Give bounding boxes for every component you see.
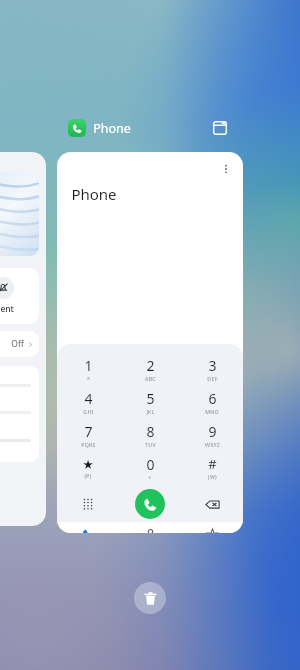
staticText: (P) — [84, 472, 92, 479]
button[interactable]: 6 — [181, 385, 243, 418]
staticText: ABC — [145, 375, 156, 382]
button[interactable]: Clear all — [134, 582, 166, 614]
staticText: (W) — [208, 473, 217, 480]
button[interactable]: 3 — [181, 352, 243, 385]
staticText: Silent — [0, 303, 14, 315]
staticText: WXYZ — [205, 441, 220, 448]
button[interactable]: Contacts — [119, 528, 181, 533]
button[interactable]: 4 — [57, 385, 119, 418]
staticText: # — [208, 455, 217, 473]
button[interactable]: 7 — [57, 418, 119, 451]
button[interactable]: More options — [217, 160, 235, 178]
button[interactable]: Favourites — [181, 528, 243, 533]
button[interactable]: Call — [135, 489, 165, 519]
button[interactable]: Phone — [57, 528, 119, 533]
button[interactable]: Off — [0, 331, 39, 357]
button[interactable]: Silent — [0, 152, 46, 526]
staticText: GHI — [83, 408, 94, 415]
button[interactable]: 5 — [119, 385, 181, 418]
staticText: Phone — [93, 120, 131, 137]
button[interactable]: Split screen — [210, 118, 230, 138]
staticText: 7 — [84, 422, 93, 441]
staticText: 5 — [146, 389, 155, 408]
staticText: JKL — [146, 408, 155, 415]
button[interactable]: More options — [57, 152, 243, 533]
staticText: + — [148, 474, 152, 481]
button[interactable]: Backspace — [199, 491, 225, 517]
staticText: 4 — [84, 389, 93, 408]
staticText: DEF — [207, 375, 218, 382]
staticText: Off — [11, 338, 24, 350]
button[interactable]: ★ — [57, 451, 119, 484]
staticText: TUV — [145, 441, 156, 448]
button[interactable]: 8 — [119, 418, 181, 451]
button[interactable]: 2 — [119, 352, 181, 385]
button[interactable]: 0 — [119, 451, 181, 484]
button[interactable]: 1 — [57, 352, 119, 385]
staticText: Phone — [71, 184, 117, 204]
staticText: 1 — [84, 356, 93, 375]
button[interactable]: # — [181, 451, 243, 484]
button[interactable]: Phone app icon — [68, 119, 86, 137]
button[interactable]: Silent — [0, 268, 39, 324]
staticText: 6 — [208, 389, 217, 408]
staticText: ★ — [82, 457, 94, 472]
staticText: 9 — [208, 422, 217, 441]
staticText: 2 — [146, 356, 155, 375]
staticText: MNO — [205, 408, 219, 415]
staticText: 8 — [146, 422, 155, 441]
button[interactable]: 9 — [181, 418, 243, 451]
staticText: ∞ — [86, 375, 91, 381]
staticText: 0 — [146, 455, 155, 474]
staticText: 3 — [208, 356, 217, 375]
staticText: PQRS — [81, 441, 96, 448]
button[interactable]: Keypad — [75, 491, 101, 517]
